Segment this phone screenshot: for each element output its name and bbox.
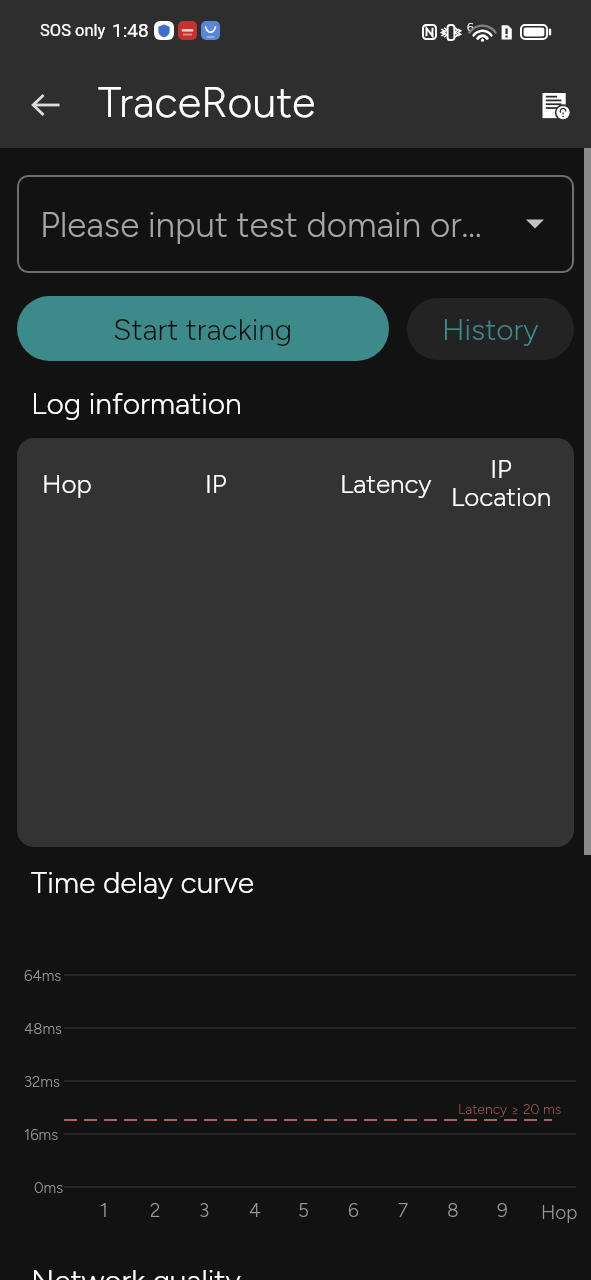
staticText: Please input test domain or… [40, 204, 482, 246]
staticText: 8 [447, 1199, 459, 1222]
button[interactable]: History [407, 298, 574, 360]
staticText: 16ms [24, 1126, 59, 1144]
staticText: 6 [467, 20, 474, 34]
staticText: IP [205, 468, 227, 499]
staticText: 64ms [24, 967, 62, 985]
staticText: 5 [298, 1199, 309, 1222]
staticText: Latency ≥ 20 ms [458, 1101, 562, 1118]
staticText: Time delay curve [31, 864, 255, 900]
staticText: 9 [497, 1199, 508, 1222]
staticText: 3 [199, 1199, 210, 1222]
button[interactable]: Please input test domain or… [17, 175, 574, 273]
staticText: 6 [348, 1199, 359, 1222]
staticText: 2 [150, 1199, 161, 1222]
staticText: Hop [42, 468, 92, 499]
staticText: SOS only [40, 21, 106, 40]
button[interactable]: Start tracking [17, 296, 389, 361]
staticText: 1:48 [112, 19, 149, 41]
staticText: Log information [31, 385, 242, 421]
button[interactable]: Back [22, 81, 70, 129]
staticText: History [442, 311, 539, 347]
button[interactable]: Help document [531, 81, 579, 129]
staticText: Latency [340, 468, 432, 499]
staticText: IP Location [444, 453, 558, 513]
staticText: 1 [100, 1199, 108, 1222]
staticText: 7 [398, 1199, 409, 1222]
staticText: Network quality [31, 1262, 241, 1280]
staticText: 0ms [34, 1179, 64, 1197]
staticText: TraceRoute [98, 76, 316, 128]
staticText: 4 [249, 1199, 261, 1222]
staticText: Start tracking [113, 311, 293, 347]
staticText: Hop [541, 1201, 578, 1224]
staticText: 32ms [24, 1073, 60, 1091]
staticText: 48ms [24, 1020, 63, 1038]
